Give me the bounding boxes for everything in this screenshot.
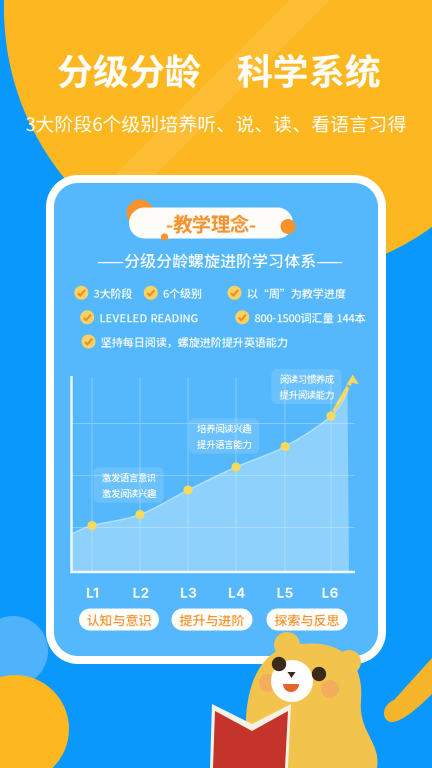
staticText: 分级分龄 科学系统 [57,43,381,95]
staticText: 激发语言意识 [102,470,156,484]
staticText: 3大阶段6个级别培养听、说、读、看语言习得 [25,109,406,137]
button[interactable]: 探索与反思 [266,608,347,630]
button[interactable]: 认知与意识 [79,608,159,630]
staticText: 以“周”为教学进度 [246,285,345,301]
staticText: LEVELED READING [99,309,198,325]
staticText: 800-1500词汇量 144本 [254,309,365,325]
staticText: L5 [276,585,293,601]
staticText: 探索与反思 [274,610,339,629]
staticText: 提升与进阶 [179,610,244,629]
staticText: L2 [132,585,148,601]
staticText: -教学理念- [166,209,256,237]
button[interactable]: 提升与进阶 [171,608,252,630]
staticText: 3大阶段 [93,285,132,301]
staticText: 激发阅读兴趣 [102,486,156,500]
staticText: 6个级别 [163,285,202,301]
staticText: 阅读习惯养成 [279,372,333,385]
staticText: L1 [86,585,99,601]
staticText: 提升阅读能力 [279,387,333,401]
staticText: L6 [321,585,338,601]
staticText: 坚持每日阅读，螺旋进阶提升英语能力 [100,333,287,350]
staticText: L3 [180,585,197,601]
staticText: ——分级分龄螺旋进阶学习体系—— [97,248,343,271]
staticText: 培养阅读兴趣 [197,421,251,435]
staticText: 认知与意识 [86,610,151,629]
staticText: 提升语言能力 [197,437,251,451]
staticText: L4 [228,585,245,601]
